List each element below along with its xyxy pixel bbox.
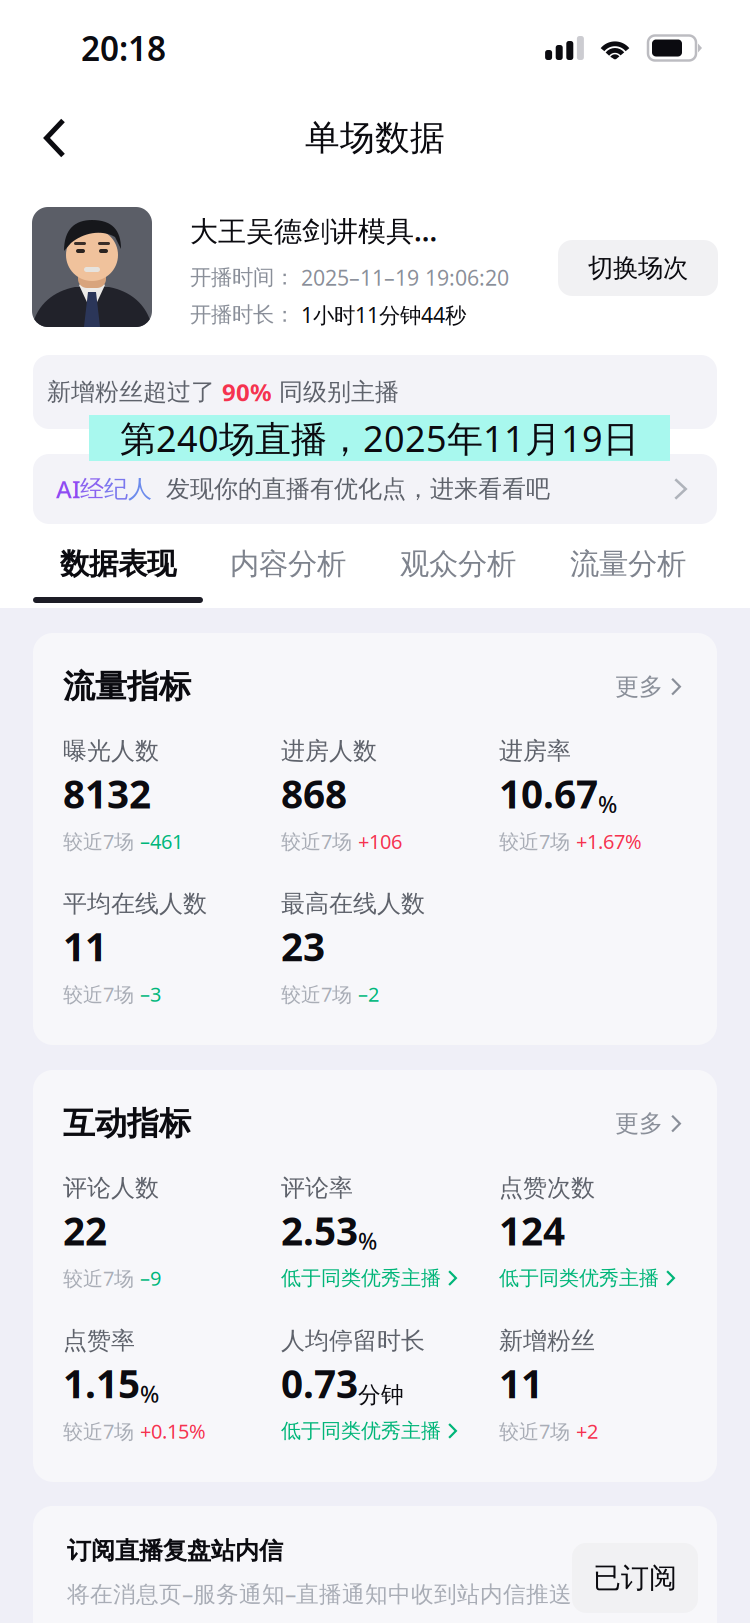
staticText: 22 <box>63 1205 107 1256</box>
staticText: –461 <box>140 828 183 854</box>
button[interactable]: 流量分析 <box>543 532 713 608</box>
staticText: 1.15 <box>63 1358 140 1409</box>
staticText: 流量指标 <box>63 667 191 706</box>
staticText: 进房人数 <box>281 736 377 766</box>
staticText: 曝光人数 <box>63 736 159 766</box>
staticText: 低于同类优秀主播 <box>281 1419 441 1443</box>
staticText: AI <box>56 473 80 505</box>
button[interactable]: 数据表现 <box>33 532 203 608</box>
staticText: 订阅直播复盘站内信 <box>67 1536 283 1565</box>
staticText: 更多 <box>615 672 663 701</box>
button[interactable]: AI <box>33 454 717 524</box>
staticText: 90% <box>222 376 272 408</box>
staticText: 23 <box>281 921 325 972</box>
staticText: 进房率 <box>499 736 571 766</box>
staticText: 纪 <box>104 474 128 504</box>
button[interactable]: 已订阅 <box>572 1543 698 1613</box>
staticText: 数据表现 <box>60 546 176 582</box>
staticText: 经 <box>80 474 104 504</box>
staticText: 单场数据 <box>305 117 445 159</box>
staticText: 124 <box>499 1205 565 1256</box>
staticText: 1小时11分钟44秒 <box>301 300 466 329</box>
staticText: 新增粉丝 <box>499 1326 595 1356</box>
staticText: 已订阅 <box>593 1561 677 1595</box>
staticText: 人 <box>128 474 152 504</box>
staticText: +0.15% <box>140 1418 206 1444</box>
staticText: 较近7场 <box>63 1265 140 1291</box>
staticText: % <box>598 789 617 819</box>
staticText: –9 <box>140 1265 161 1291</box>
staticText: 2.53 <box>281 1205 358 1256</box>
staticText: 较近7场 <box>499 828 576 854</box>
staticText: 最高在线人数 <box>281 889 425 919</box>
button[interactable]: 更多 <box>615 672 681 701</box>
staticText: –2 <box>358 981 379 1007</box>
staticText: 2025–11–19 19:06:20 <box>301 263 509 291</box>
staticText: 较近7场 <box>63 828 140 854</box>
staticText: 更多 <box>615 1109 663 1138</box>
staticText: 平均在线人数 <box>63 889 207 919</box>
staticText: 同级别主播 <box>272 377 399 407</box>
staticText: 较近7场 <box>281 981 358 1007</box>
staticText: 开播时长： <box>190 302 301 328</box>
staticText: 流量分析 <box>570 546 686 582</box>
staticText: 评论人数 <box>63 1173 159 1203</box>
staticText: 较近7场 <box>499 1418 576 1444</box>
staticText: 人均停留时长 <box>281 1326 425 1356</box>
button[interactable]: 内容分析 <box>203 532 373 608</box>
staticText: 新增粉丝超过了 <box>47 377 222 407</box>
staticText: 内容分析 <box>230 546 346 582</box>
staticText: 8132 <box>63 768 151 819</box>
button[interactable]: 低于同类优秀主播 <box>499 1263 675 1293</box>
staticText: 点赞次数 <box>499 1173 595 1203</box>
staticText: 11 <box>499 1358 543 1409</box>
staticText: 点赞率 <box>63 1326 135 1356</box>
button[interactable]: 返回 <box>24 107 86 169</box>
button[interactable]: 低于同类优秀主播 <box>281 1263 457 1293</box>
staticText: 观众分析 <box>400 546 516 582</box>
staticText: 开播时间： <box>190 264 301 290</box>
staticText: 切换场次 <box>588 252 688 283</box>
button[interactable]: 观众分析 <box>373 532 543 608</box>
staticText: +1.67% <box>576 828 642 854</box>
staticText: 20:18 <box>81 26 166 70</box>
staticText: 将在消息页–服务通知–直播通知中收到站内信推送 <box>67 1578 572 1608</box>
staticText: 较近7场 <box>63 1418 140 1444</box>
staticText: 0.73 <box>281 1358 358 1409</box>
staticText: 评论率 <box>281 1173 353 1203</box>
staticText: 发现你的直播有优化点，进来看看吧 <box>152 474 550 504</box>
staticText: 低于同类优秀主播 <box>499 1266 659 1290</box>
staticText: % <box>140 1379 159 1409</box>
staticText: % <box>358 1226 377 1256</box>
button[interactable]: 低于同类优秀主播 <box>281 1416 457 1446</box>
staticText: 低于同类优秀主播 <box>281 1266 441 1290</box>
button[interactable]: 更多 <box>615 1109 681 1138</box>
staticText: +106 <box>358 828 402 854</box>
staticText: 第240场直播，2025年11月19日 <box>120 414 639 462</box>
staticText: 较近7场 <box>281 828 358 854</box>
staticText: 11 <box>63 921 107 972</box>
staticText: 10.67 <box>499 768 598 819</box>
staticText: –3 <box>140 981 161 1007</box>
staticText: 大王吴德剑讲模具… <box>190 212 437 249</box>
button[interactable]: 切换场次 <box>558 240 718 296</box>
staticText: 868 <box>281 768 347 819</box>
staticText: 分钟 <box>358 1381 404 1409</box>
staticText: +2 <box>576 1418 598 1444</box>
staticText: 互动指标 <box>63 1104 191 1143</box>
staticText: 较近7场 <box>63 981 140 1007</box>
